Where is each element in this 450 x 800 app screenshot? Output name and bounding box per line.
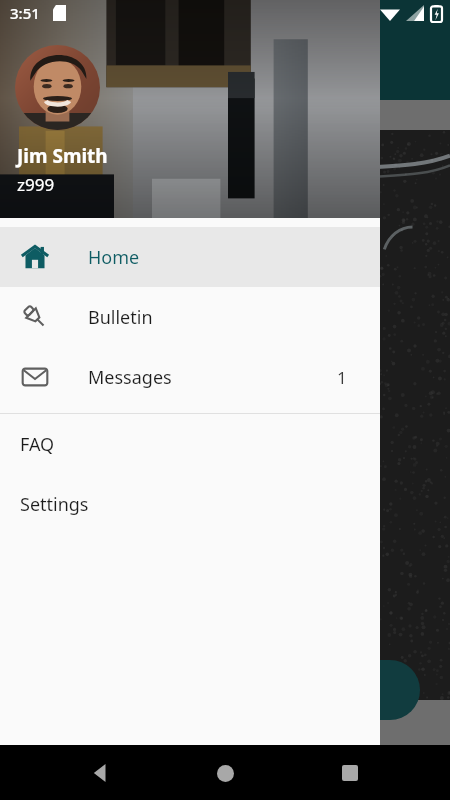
button[interactable]: Home [201, 749, 249, 797]
button[interactable]: Settings [0, 474, 380, 534]
staticText: FAQ [20, 432, 55, 457]
staticText: z999 [17, 173, 55, 196]
button[interactable]: Recent apps [326, 749, 374, 797]
staticText: Bulletin [88, 305, 153, 330]
button[interactable]: Back [77, 749, 125, 797]
staticText: Messages [88, 365, 172, 390]
button[interactable]: TO [290, 660, 420, 720]
staticText: Settings [20, 492, 89, 517]
button[interactable]: Messages [0, 347, 380, 407]
button[interactable]: Bulletin [0, 287, 380, 347]
button[interactable]: Home [0, 227, 380, 287]
staticText: 1 [337, 366, 347, 389]
staticText: Home [88, 245, 140, 270]
staticText: 3:51 [10, 3, 40, 23]
button[interactable]: FAQ [0, 414, 380, 474]
staticText: Jim Smith [17, 143, 108, 169]
